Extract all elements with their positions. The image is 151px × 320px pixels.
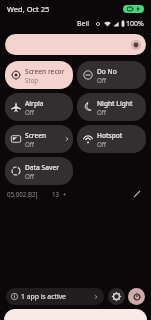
staticText: Wed, Oct 25 [7, 4, 50, 14]
button[interactable]: Settings [108, 288, 125, 305]
staticText: 1 app is active [21, 292, 66, 301]
staticText: Screen [25, 131, 47, 140]
button[interactable]: Battery charging [123, 5, 144, 13]
button[interactable]: Night Light [77, 93, 146, 121]
button[interactable]: Hotspot [77, 125, 146, 153]
staticText: 13 [52, 190, 60, 198]
staticText: 100% [126, 19, 144, 29]
button[interactable]: Airpla [5, 93, 73, 121]
button[interactable]: Edit tiles [130, 187, 144, 201]
staticText: Off [97, 108, 107, 116]
staticText: Data Saver [25, 163, 60, 172]
button[interactable]: Screen [5, 125, 73, 153]
staticText: Off [25, 108, 35, 116]
staticText: Off [97, 140, 107, 148]
staticText: Bell [77, 19, 90, 29]
staticText: Do No [97, 67, 117, 76]
button[interactable]: Do No [77, 61, 146, 89]
staticText: 05.002.B2] [7, 190, 38, 198]
button[interactable]: Screen recor [5, 61, 73, 89]
button[interactable]: Brightness slider [5, 34, 146, 55]
staticText: Night Light [97, 99, 133, 108]
staticText: Off [97, 76, 107, 84]
staticText: Stop [25, 76, 39, 84]
staticText: Airpla [25, 99, 44, 108]
button[interactable]: Power [128, 288, 145, 305]
staticText: Off [25, 140, 35, 148]
staticText: Hotspot [97, 131, 123, 140]
staticText: Screen recor [25, 67, 65, 76]
staticText: Off [25, 172, 35, 180]
button[interactable]: 1 app is active [6, 288, 104, 305]
button[interactable]: Data Saver [5, 157, 73, 185]
